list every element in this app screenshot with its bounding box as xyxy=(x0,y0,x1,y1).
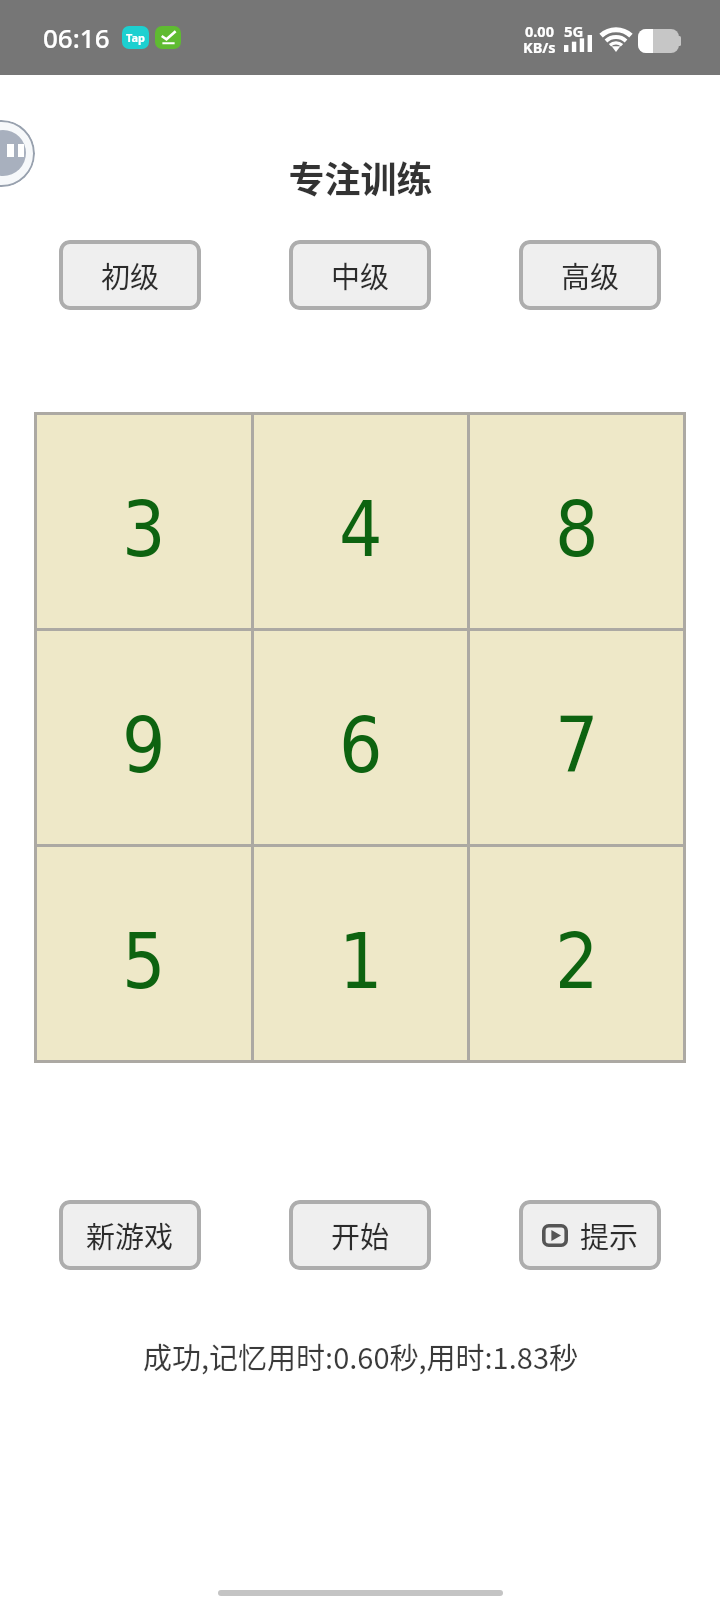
button[interactable]: 5 xyxy=(37,847,251,1060)
button[interactable]: 提示 xyxy=(519,1200,661,1270)
button[interactable]: 3 xyxy=(37,415,251,628)
staticText: 成功,记忆用时:0.60秒,用时:1.83秒 xyxy=(143,1335,578,1377)
staticText: 2 xyxy=(555,917,599,1005)
button[interactable]: 9 xyxy=(37,631,251,844)
staticText: 专注训练 xyxy=(288,151,433,197)
staticText: 提示 xyxy=(580,1214,639,1256)
staticText: 开始 xyxy=(331,1214,390,1256)
button[interactable]: 中级 xyxy=(289,240,431,310)
staticText: Tap xyxy=(126,30,146,45)
staticText: 3 xyxy=(122,485,166,573)
staticText: 0.00 xyxy=(525,21,554,41)
staticText: 5G xyxy=(564,21,584,41)
button[interactable]: 高级 xyxy=(519,240,661,310)
button[interactable]: 4 xyxy=(254,415,467,628)
button[interactable]: 8 xyxy=(470,415,683,628)
staticText: 4 xyxy=(339,485,383,573)
staticText: 06:16 xyxy=(43,20,110,55)
staticText: 7 xyxy=(555,701,599,789)
staticText: 5 xyxy=(122,917,166,1005)
staticText: 1 xyxy=(339,917,383,1005)
staticText: 初级 xyxy=(101,254,160,296)
button[interactable]: Pause xyxy=(0,120,35,187)
button[interactable]: 开始 xyxy=(289,1200,431,1270)
staticText: 中级 xyxy=(331,254,390,296)
button[interactable]: 1 xyxy=(254,847,467,1060)
staticText: 高级 xyxy=(561,254,620,296)
staticText: 6 xyxy=(339,701,383,789)
button[interactable]: 新游戏 xyxy=(59,1200,201,1270)
button[interactable]: 6 xyxy=(254,631,467,844)
staticText: 8 xyxy=(555,485,599,573)
button[interactable]: 2 xyxy=(470,847,683,1060)
button[interactable]: 7 xyxy=(470,631,683,844)
button[interactable]: 初级 xyxy=(59,240,201,310)
staticText: 9 xyxy=(122,701,166,789)
staticText: KB/s xyxy=(523,37,556,57)
staticText: 新游戏 xyxy=(86,1214,174,1256)
